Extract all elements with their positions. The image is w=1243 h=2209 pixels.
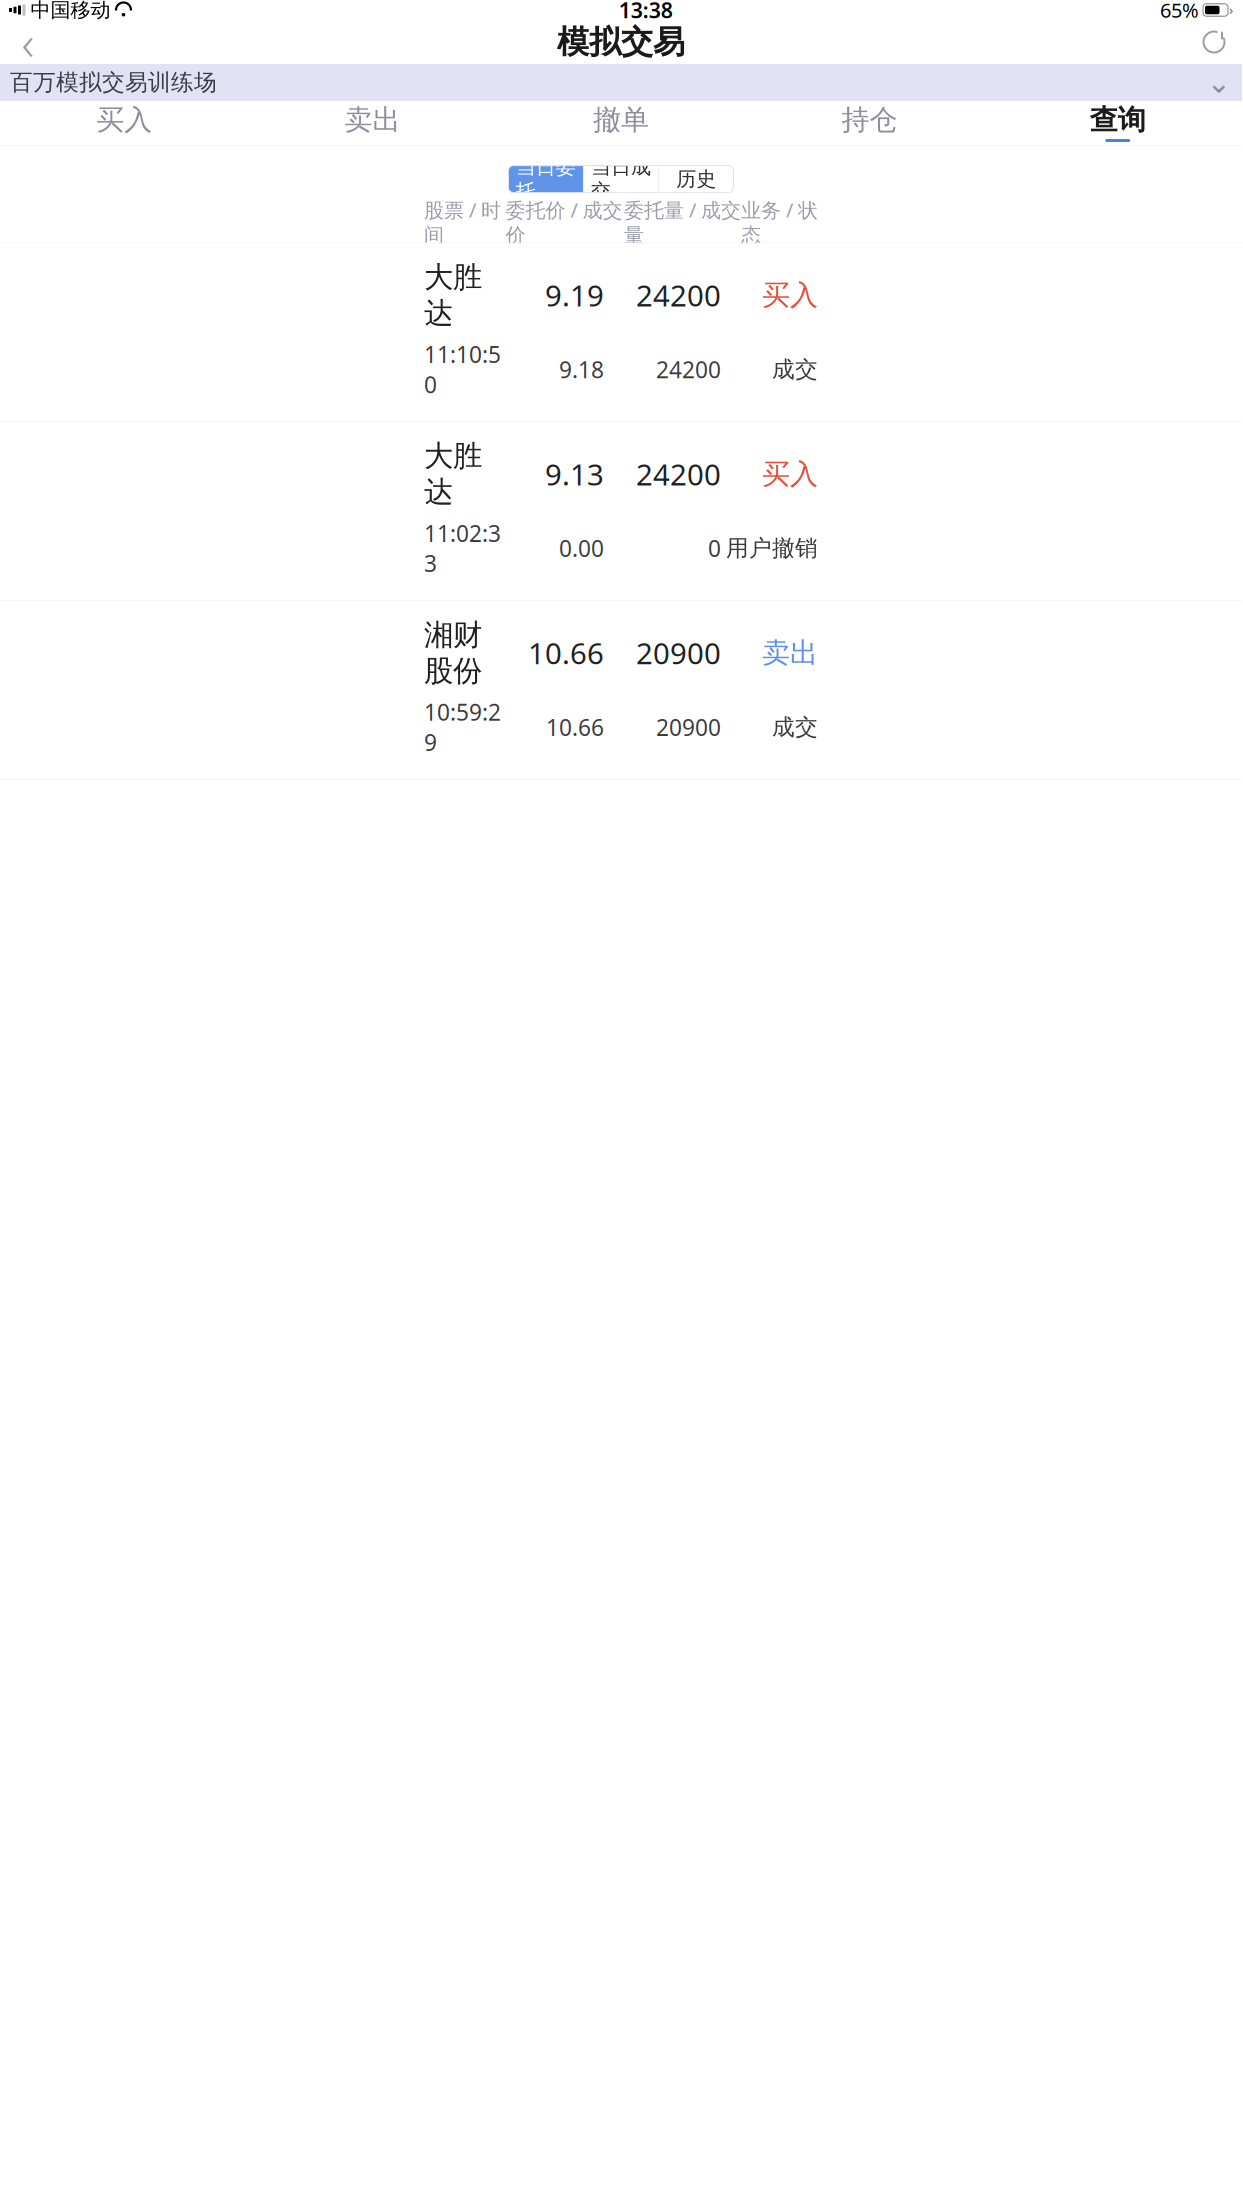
staticText: 持仓 <box>841 103 897 137</box>
staticText: 10.66 <box>528 633 604 672</box>
staticText: › <box>1229 2 1233 18</box>
button[interactable]: 湘财股份 <box>0 601 1242 779</box>
staticText: 13:38 <box>619 0 673 24</box>
staticText: 委托价 / 成交价 <box>505 196 622 248</box>
button[interactable]: 大胜达 <box>0 243 1242 421</box>
staticText: 0.00 <box>559 533 604 563</box>
button[interactable]: 持仓 <box>745 101 994 145</box>
button[interactable]: 大胜达 <box>0 422 1242 600</box>
staticText: 委托量 / 成交量 <box>624 196 741 248</box>
staticText: 撤单 <box>593 103 649 137</box>
button[interactable]: 当日委托 <box>508 166 583 193</box>
staticText: 9.18 <box>559 354 604 384</box>
staticText: 24200 <box>656 354 721 384</box>
staticText: 24200 <box>636 455 721 494</box>
button[interactable]: 百万模拟交易训练场 <box>0 64 1242 101</box>
staticText: 大胜达 <box>424 438 482 510</box>
staticText: 当日委托 <box>516 154 576 204</box>
button[interactable]: 返回 <box>0 20 56 64</box>
button[interactable]: 卖出 <box>248 101 497 145</box>
staticText: 24200 <box>636 276 721 315</box>
button[interactable]: 买入 <box>0 101 248 145</box>
staticText: 卖出 <box>762 636 818 670</box>
staticText: 查询 <box>1090 103 1146 137</box>
staticText: 湘财股份 <box>424 617 482 689</box>
staticText: ⌄ <box>1206 66 1231 99</box>
staticText: 20900 <box>656 712 721 742</box>
staticText: 中国移动 <box>30 0 110 22</box>
staticText: 0 <box>708 533 721 563</box>
staticText: 卖出 <box>345 103 401 137</box>
staticText: 20900 <box>636 633 721 672</box>
staticText: 业务 / 状态 <box>741 196 818 248</box>
staticText: 成交 <box>772 713 818 741</box>
staticText: 当日成交 <box>591 154 651 204</box>
staticText: 10.66 <box>546 712 604 742</box>
staticText: 11:02:33 <box>424 518 501 578</box>
staticText: 历史 <box>676 167 716 191</box>
staticText: 股票 / 时间 <box>424 196 501 248</box>
staticText: 模拟交易 <box>557 22 685 62</box>
staticText: 11:10:50 <box>424 339 501 399</box>
button[interactable]: 刷新 <box>1186 20 1242 64</box>
staticText: 9.19 <box>545 276 604 315</box>
staticText: ‹ <box>21 10 34 74</box>
staticText: 大胜达 <box>424 259 482 331</box>
button[interactable]: 查询 <box>994 101 1242 145</box>
staticText: 百万模拟交易训练场 <box>10 69 217 96</box>
staticText: 用户撤销 <box>726 534 818 562</box>
staticText: 成交 <box>772 355 818 383</box>
staticText: 9.13 <box>545 455 604 494</box>
staticText: 65% <box>1160 0 1199 23</box>
button[interactable]: 历史 <box>659 166 733 193</box>
staticText: 买入 <box>762 457 818 491</box>
staticText: 买入 <box>96 103 152 137</box>
button[interactable]: 撤单 <box>497 101 745 145</box>
staticText: 10:59:29 <box>424 697 501 757</box>
button[interactable]: 当日成交 <box>584 166 658 193</box>
staticText: 买入 <box>762 278 818 312</box>
